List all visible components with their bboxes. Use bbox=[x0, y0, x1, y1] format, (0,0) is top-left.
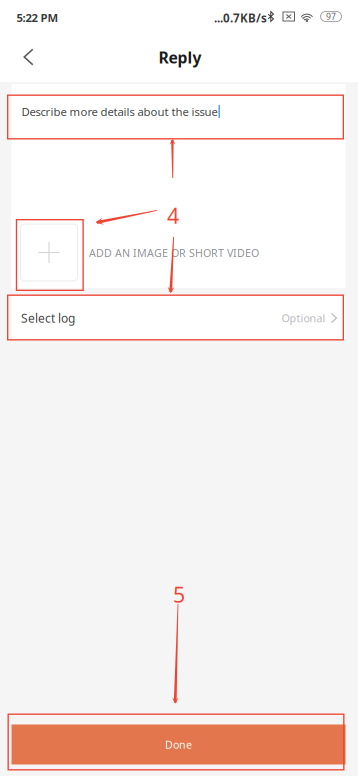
button[interactable]: Select log bbox=[11, 296, 345, 340]
button[interactable]: Back bbox=[3, 36, 53, 78]
staticText: 97 bbox=[326, 11, 336, 22]
staticText: Select log bbox=[21, 310, 75, 326]
staticText: Reply bbox=[158, 47, 201, 68]
button[interactable]: Describe more details about the issue bbox=[11, 84, 345, 139]
staticText: ...0.7KB/s bbox=[214, 10, 267, 26]
button[interactable]: Done bbox=[11, 724, 345, 764]
staticText: Optional bbox=[281, 311, 325, 325]
button[interactable]: Add an image or short video bbox=[20, 224, 77, 281]
staticText: Describe more details about the issue bbox=[21, 104, 217, 119]
staticText: 4 bbox=[167, 201, 179, 230]
staticText: Done bbox=[165, 737, 192, 752]
staticText: ADD AN IMAGE OR SHORT VIDEO bbox=[89, 245, 259, 260]
staticText: 5 bbox=[173, 580, 185, 609]
staticText: 5:22 PM bbox=[16, 10, 58, 25]
